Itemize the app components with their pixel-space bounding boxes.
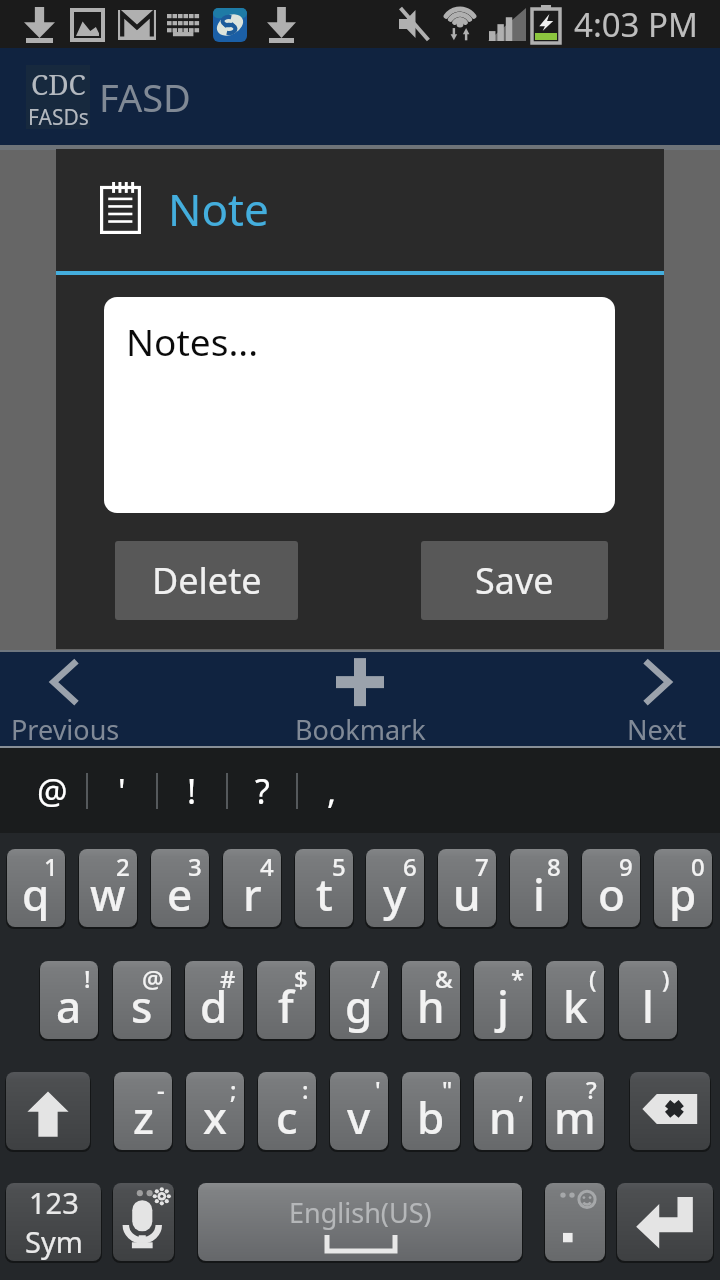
staticText: , <box>518 1073 525 1106</box>
staticText: English(US) <box>289 1194 432 1231</box>
button[interactable]: - <box>114 1072 172 1150</box>
button[interactable]: 1 <box>7 849 65 927</box>
staticText: f <box>278 976 294 1036</box>
staticText: ! <box>84 962 91 995</box>
staticText: FASD <box>99 71 191 123</box>
button[interactable]: 123 <box>6 1183 101 1261</box>
button[interactable]: : <box>258 1072 316 1150</box>
button[interactable]: 9 <box>582 849 640 927</box>
staticText: 4:03 PM <box>574 2 698 47</box>
button[interactable]: ' <box>88 761 156 821</box>
button[interactable]: @ <box>113 961 171 1039</box>
button[interactable]: Next <box>592 650 720 748</box>
staticText: - <box>157 1073 165 1106</box>
staticText: / <box>371 962 381 995</box>
button[interactable]: 4 <box>223 849 281 927</box>
staticText: n <box>489 1087 517 1147</box>
staticText: g <box>345 976 373 1036</box>
staticText: FASDs <box>28 103 89 129</box>
staticText: 7 <box>475 850 489 883</box>
staticText: # <box>220 962 236 995</box>
button[interactable]: Backspace <box>630 1072 710 1150</box>
button[interactable]: ; <box>186 1072 244 1150</box>
staticText: 1 <box>44 850 58 883</box>
staticText: 123 <box>29 1183 79 1222</box>
staticText: r <box>243 864 262 924</box>
button[interactable]: & <box>402 961 460 1039</box>
staticText: 4 <box>260 850 274 883</box>
button[interactable]: ) <box>619 961 677 1039</box>
button[interactable]: ( <box>546 961 604 1039</box>
staticText: Notes... <box>126 316 259 366</box>
button[interactable]: ' <box>330 1072 388 1150</box>
staticText: ( <box>589 962 597 995</box>
staticText: , <box>327 768 337 814</box>
staticText: e <box>167 864 193 924</box>
staticText: Bookmark <box>295 711 426 748</box>
staticText: 0 <box>691 850 705 883</box>
staticText: l <box>642 976 654 1036</box>
staticText: d <box>200 976 228 1036</box>
staticText: ? <box>586 1073 597 1106</box>
button[interactable]: 0 <box>654 849 712 927</box>
button[interactable]: " <box>402 1072 460 1150</box>
button[interactable]: , <box>474 1072 532 1150</box>
staticText: y <box>383 864 407 924</box>
staticText: t <box>316 864 333 924</box>
staticText: ; <box>230 1073 237 1106</box>
button[interactable]: ? <box>546 1072 604 1150</box>
button[interactable]: Period <box>545 1183 605 1261</box>
button[interactable]: Save <box>421 541 608 620</box>
staticText: h <box>417 976 445 1036</box>
staticText: 5 <box>332 850 346 883</box>
button[interactable]: ? <box>228 761 296 821</box>
staticText: p <box>669 864 697 924</box>
button[interactable]: 8 <box>510 849 568 927</box>
button[interactable]: English(US) <box>198 1183 522 1261</box>
button[interactable]: * <box>474 961 532 1039</box>
staticText: o <box>598 864 625 924</box>
button[interactable]: @ <box>18 761 86 821</box>
button[interactable]: 3 <box>151 849 209 927</box>
button[interactable]: Previous <box>0 650 130 748</box>
staticText: Next <box>627 711 687 748</box>
staticText: ' <box>375 1073 381 1106</box>
staticText: a <box>56 976 82 1036</box>
button[interactable]: / <box>330 961 388 1039</box>
staticText: 6 <box>403 850 417 883</box>
button[interactable]: Voice input <box>113 1183 174 1261</box>
button[interactable]: Delete <box>115 541 298 620</box>
staticText: 8 <box>547 850 561 883</box>
staticText: Previous <box>11 711 120 748</box>
staticText: ! <box>187 768 197 814</box>
button[interactable]: 2 <box>79 849 137 927</box>
button[interactable]: # <box>185 961 243 1039</box>
staticText: ) <box>662 962 670 995</box>
button[interactable]: 7 <box>438 849 496 927</box>
staticText: k <box>563 976 588 1036</box>
staticText: w <box>90 864 126 924</box>
staticText: Save <box>475 556 554 605</box>
button[interactable]: , <box>298 761 366 821</box>
button[interactable]: 6 <box>366 849 424 927</box>
staticText: Delete <box>152 556 262 605</box>
staticText: u <box>453 864 481 924</box>
button[interactable]: Enter <box>617 1183 713 1261</box>
staticText: Sym <box>25 1222 83 1261</box>
staticText: x <box>203 1087 227 1147</box>
button[interactable]: Bookmark <box>230 650 490 748</box>
staticText: 2 <box>116 850 130 883</box>
button[interactable]: Notes... <box>104 297 615 513</box>
staticText: b <box>417 1087 445 1147</box>
button[interactable]: ! <box>40 961 98 1039</box>
staticText: ? <box>255 768 270 814</box>
staticText: v <box>347 1087 371 1147</box>
staticText: & <box>435 962 453 995</box>
button[interactable]: Shift <box>6 1072 90 1150</box>
button[interactable]: $ <box>257 961 315 1039</box>
staticText: s <box>131 976 153 1036</box>
button[interactable]: ! <box>158 761 226 821</box>
staticText: Note <box>168 179 269 239</box>
button[interactable]: 5 <box>295 849 353 927</box>
staticText: z <box>133 1087 154 1147</box>
